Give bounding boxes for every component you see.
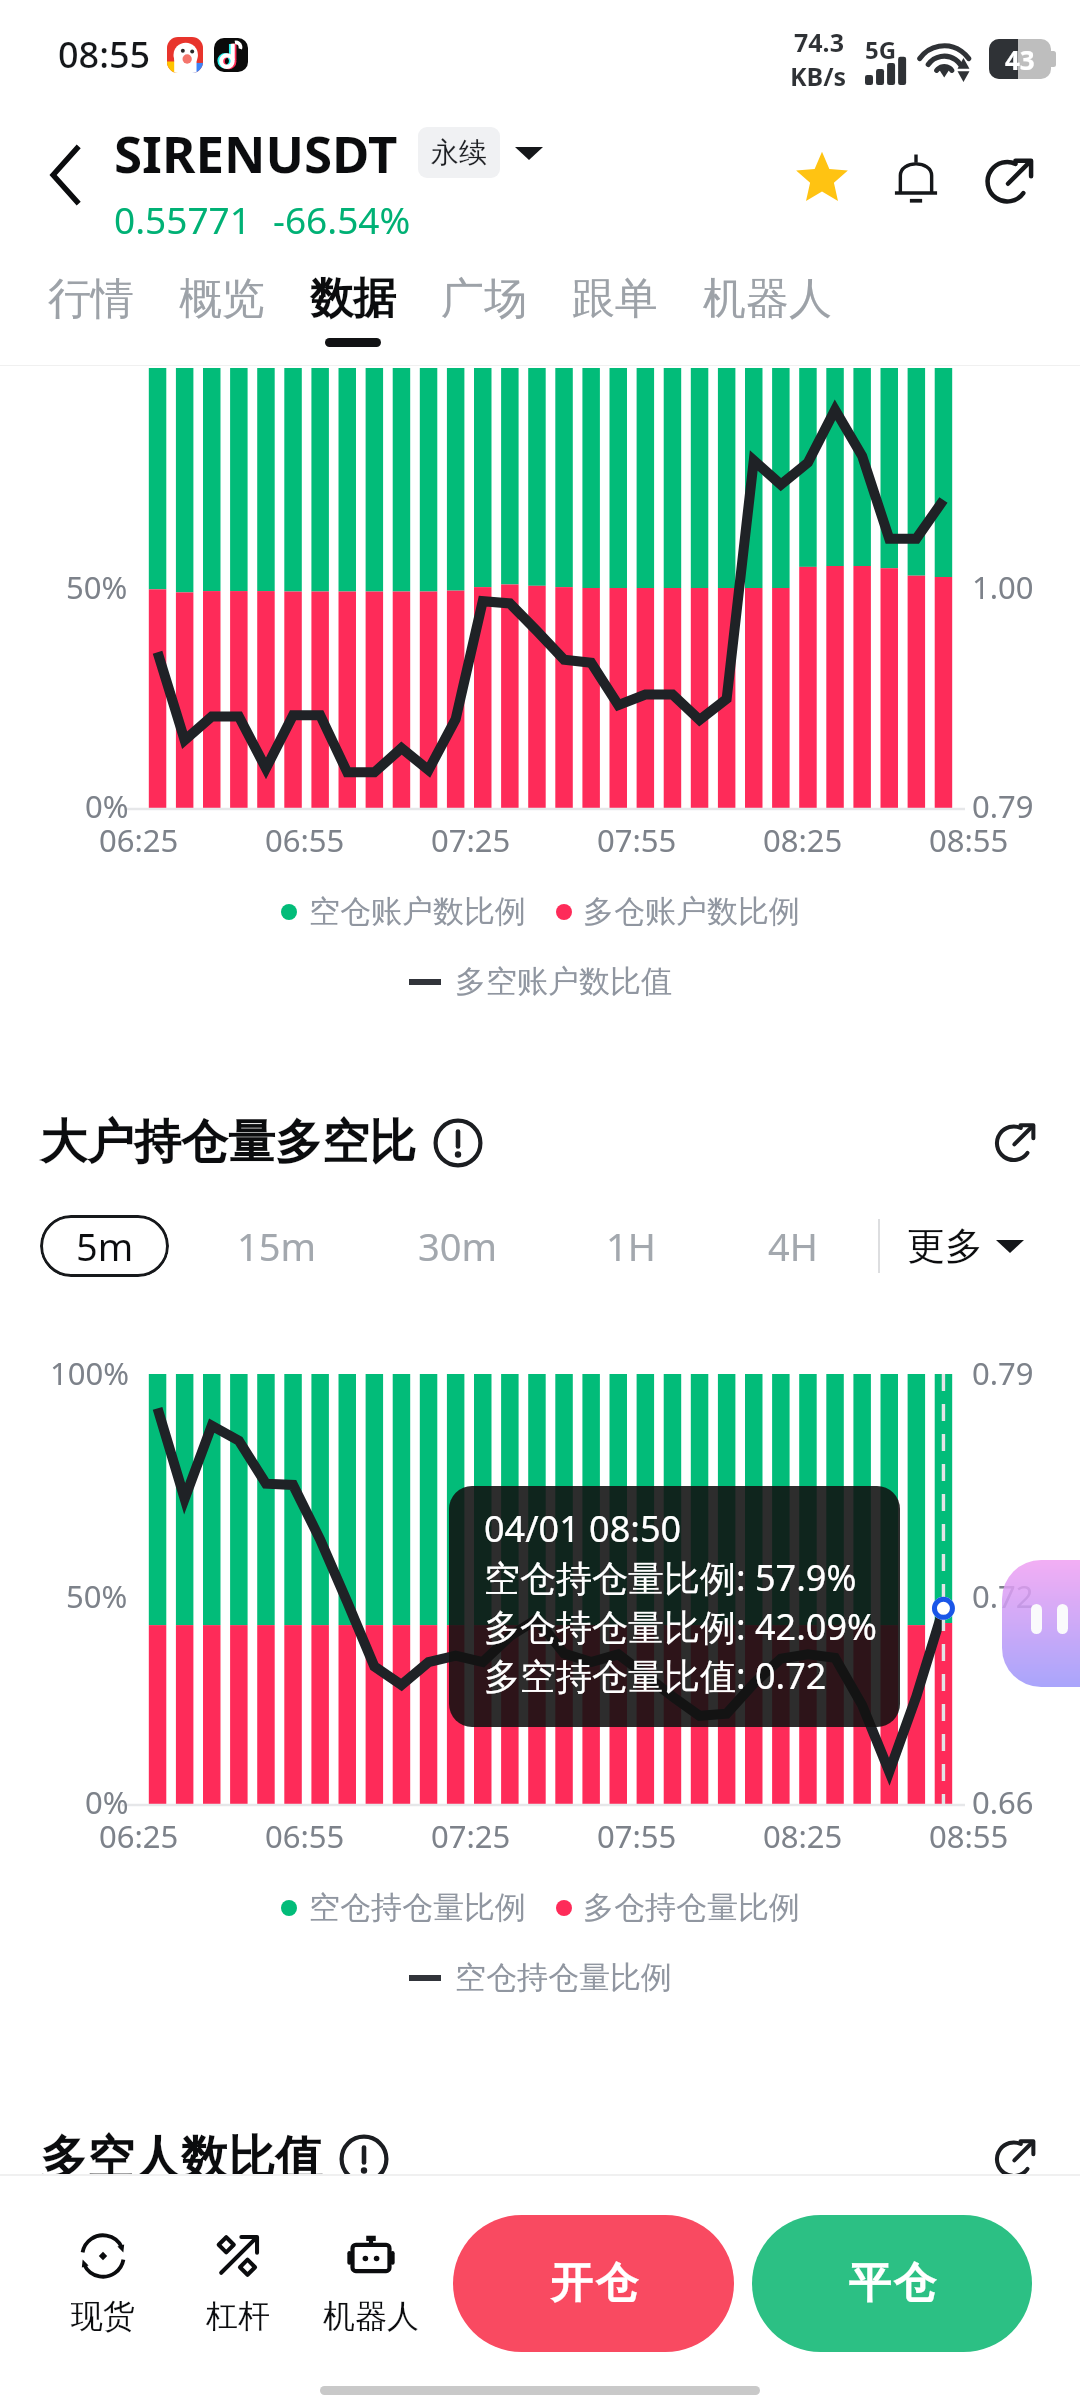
staticText: 多空持仓量比值: 0.72 — [484, 1651, 827, 1700]
button[interactable]: 广场 — [441, 272, 527, 338]
button[interactable]: 更多 — [907, 1215, 1024, 1277]
staticText: 空仓持仓量比例 — [455, 1958, 672, 1997]
staticText: 多仓持仓量比例: 42.09% — [484, 1602, 877, 1651]
button[interactable]: Expand chart — [988, 2129, 1044, 2185]
staticText: 概览 — [179, 272, 265, 326]
staticText: 5G — [865, 33, 897, 66]
staticText: 机器人 — [703, 272, 832, 326]
staticText: 06:55 — [265, 819, 345, 861]
button[interactable]: 杠杆 — [175, 2228, 301, 2336]
staticText: 多空账户数比值 — [455, 962, 672, 1001]
staticText: 50% — [66, 566, 128, 608]
staticText: 机器人 — [323, 2296, 419, 2336]
button[interactable]: 行情 — [48, 272, 134, 338]
button[interactable]: 1H — [606, 1215, 656, 1277]
staticText: 永续 — [431, 135, 487, 170]
staticText: 06:55 — [265, 1815, 345, 1857]
staticText: 5m — [76, 1220, 134, 1272]
button[interactable]: Favorite — [788, 145, 856, 213]
button[interactable]: 概览 — [179, 272, 265, 338]
staticText: -66.54% — [273, 194, 411, 244]
staticText: SIRENUSDT — [114, 118, 398, 187]
button[interactable]: 现货 — [40, 2228, 166, 2336]
staticText: 08:55 — [929, 819, 1009, 861]
button[interactable]: 平仓 — [752, 2215, 1032, 2352]
button[interactable]: Back — [30, 140, 100, 210]
staticText: 开仓 — [549, 2257, 639, 2310]
staticText: 空仓持仓量比例: 57.9% — [484, 1553, 857, 1602]
staticText: 15m — [237, 1220, 317, 1272]
button[interactable]: 4H — [768, 1215, 818, 1277]
staticText: 100% — [50, 1352, 129, 1394]
staticText: 4H — [768, 1220, 818, 1272]
staticText: KB/s — [790, 59, 847, 93]
staticText: 0.55771 — [114, 194, 251, 244]
staticText: 07:25 — [431, 819, 511, 861]
staticText: 平仓 — [847, 2257, 937, 2310]
button[interactable]: Share — [976, 145, 1044, 213]
button[interactable]: Assistant — [1002, 1560, 1080, 1687]
staticText: 多空人数比值 — [40, 2129, 322, 2188]
staticText: 0% — [85, 785, 129, 827]
button[interactable]: 机器人 — [703, 272, 832, 338]
staticText: 现货 — [71, 2296, 135, 2336]
button[interactable]: Notifications — [882, 145, 950, 213]
staticText: 43 — [1005, 42, 1035, 77]
staticText: 08:25 — [763, 1815, 843, 1857]
staticText: 行情 — [48, 272, 134, 326]
staticText: 多仓持仓量比例 — [583, 1888, 800, 1927]
button[interactable]: SIRENUSDT — [114, 118, 543, 187]
staticText: 30m — [418, 1220, 498, 1272]
staticText: 大户持仓量多空比 — [40, 1113, 416, 1172]
staticText: 更多 — [907, 1222, 983, 1270]
staticText: 06:25 — [99, 1815, 179, 1857]
button[interactable]: 跟单 — [572, 272, 658, 338]
staticText: 06:25 — [99, 819, 179, 861]
button[interactable]: 30m — [418, 1215, 498, 1277]
staticText: 1H — [606, 1220, 656, 1272]
staticText: 08:55 — [58, 30, 151, 79]
staticText: 1.00 — [972, 566, 1034, 608]
staticText: 04/01 08:50 — [484, 1504, 682, 1553]
staticText: 0% — [85, 1781, 129, 1823]
staticText: 跟单 — [572, 272, 658, 326]
button[interactable]: 5m — [40, 1215, 169, 1277]
staticText: 杠杆 — [206, 2296, 270, 2336]
staticText: 0.72 — [972, 1575, 1034, 1617]
button[interactable]: 开仓 — [453, 2215, 734, 2352]
staticText: 07:55 — [597, 819, 677, 861]
button[interactable]: Expand chart — [988, 1113, 1044, 1169]
staticText: 50% — [66, 1575, 128, 1617]
staticText: 0.79 — [972, 785, 1034, 827]
staticText: 08:55 — [929, 1815, 1009, 1857]
staticText: 07:55 — [597, 1815, 677, 1857]
staticText: 空仓持仓量比例 — [309, 1888, 526, 1927]
staticText: 0.79 — [972, 1352, 1034, 1394]
staticText: 07:25 — [431, 1815, 511, 1857]
staticText: 数据 — [310, 272, 396, 326]
staticText: 08:25 — [763, 819, 843, 861]
staticText: 广场 — [441, 272, 527, 326]
button[interactable]: 数据 — [310, 272, 396, 347]
staticText: 74.3 — [794, 25, 844, 59]
button[interactable]: 15m — [237, 1215, 317, 1277]
staticText: 0.66 — [972, 1781, 1034, 1823]
staticText: 多仓账户数比例 — [583, 892, 800, 931]
button[interactable]: 机器人 — [308, 2228, 434, 2336]
staticText: 空仓账户数比例 — [309, 892, 526, 931]
